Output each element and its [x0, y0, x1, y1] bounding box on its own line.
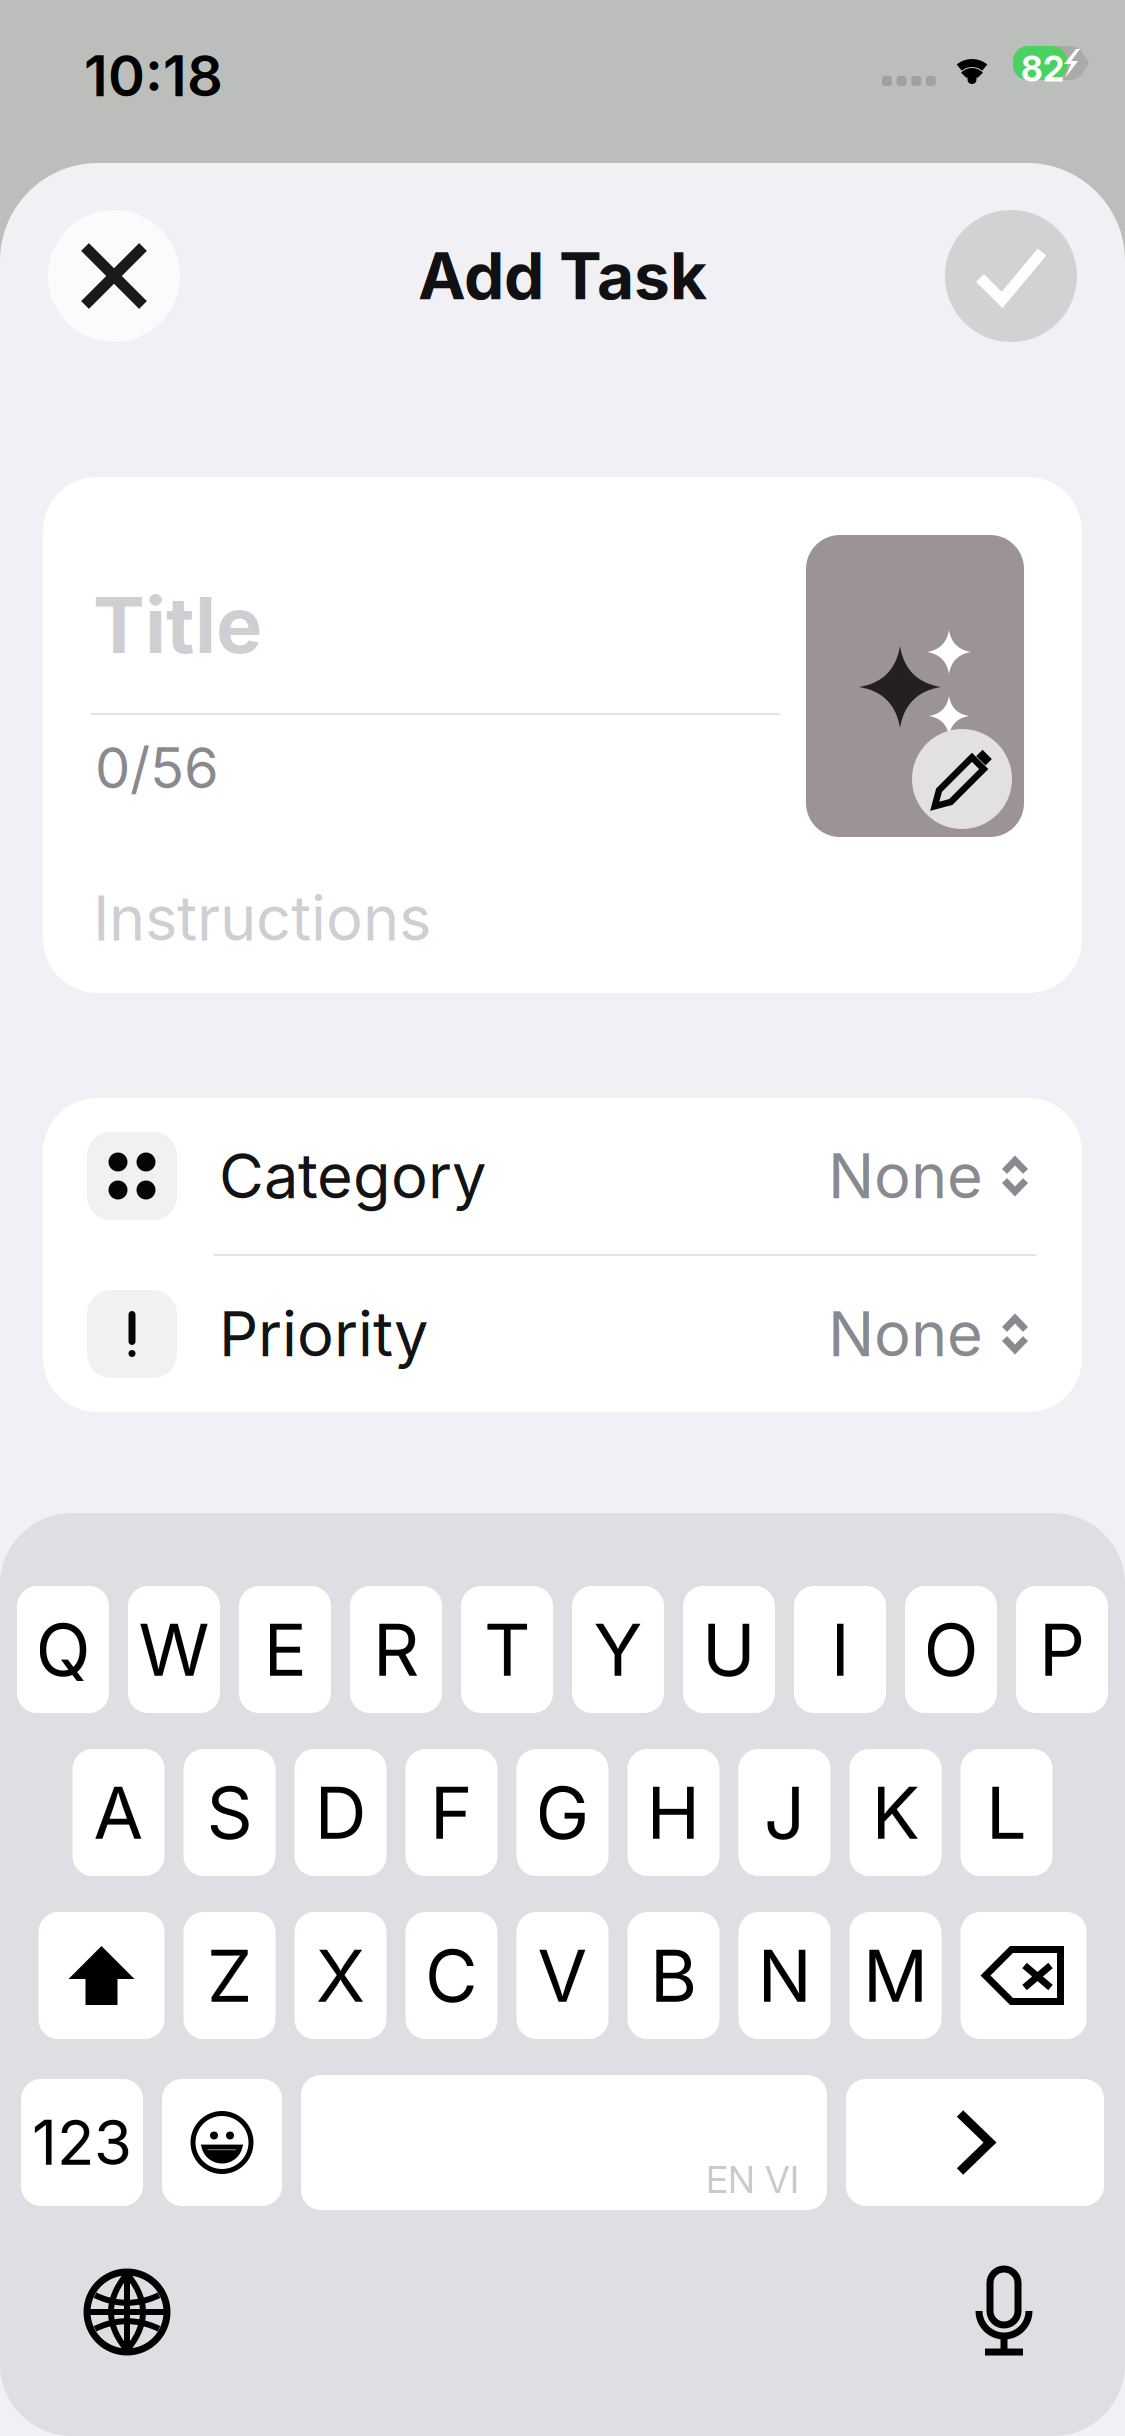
staticText: Q	[35, 1606, 90, 1693]
staticText: H	[646, 1769, 700, 1856]
staticText: E	[263, 1606, 306, 1693]
button[interactable]: A	[72, 1749, 164, 1876]
button[interactable]: Delete	[960, 1912, 1086, 2039]
staticText: Title	[93, 578, 262, 672]
button[interactable]: 123	[21, 2079, 143, 2206]
staticText: 82	[1021, 48, 1064, 90]
button[interactable]: C	[405, 1912, 497, 2039]
button[interactable]: Emoji	[162, 2079, 282, 2206]
staticText: EN VI	[706, 2157, 799, 2202]
staticText: N	[757, 1932, 811, 2019]
staticText: O	[923, 1606, 978, 1693]
staticText: None	[828, 1297, 983, 1371]
button[interactable]: T	[461, 1586, 553, 1713]
staticText: G	[535, 1769, 589, 1856]
staticText: W	[138, 1606, 209, 1693]
button[interactable]: Priority	[43, 1256, 1082, 1412]
button[interactable]: Return	[846, 2079, 1104, 2206]
button[interactable]: Next keyboard	[0, 2272, 167, 2352]
button[interactable]: W	[128, 1586, 220, 1713]
button[interactable]: Category	[43, 1098, 1082, 1254]
staticText: U	[702, 1606, 756, 1693]
button[interactable]: Q	[17, 1586, 109, 1713]
button[interactable]: space	[301, 2075, 827, 2210]
button[interactable]: Y	[572, 1586, 664, 1713]
button[interactable]: S	[183, 1749, 275, 1876]
button[interactable]: J	[738, 1749, 830, 1876]
staticText: Z	[207, 1932, 252, 2019]
button[interactable]: E	[239, 1586, 331, 1713]
button[interactable]: B	[627, 1912, 719, 2039]
staticText: Category	[219, 1139, 486, 1213]
button[interactable]: G	[516, 1749, 608, 1876]
staticText: 10:18	[84, 42, 223, 110]
staticText: Priority	[219, 1297, 428, 1371]
button[interactable]: I	[794, 1586, 886, 1713]
staticText: M	[863, 1932, 928, 2019]
staticText: Y	[593, 1606, 642, 1693]
staticText: P	[1039, 1606, 1085, 1693]
staticText: V	[537, 1932, 587, 2019]
staticText: F	[430, 1769, 473, 1856]
staticText: C	[425, 1932, 478, 2019]
staticText: R	[373, 1606, 419, 1693]
button[interactable]: K	[849, 1749, 941, 1876]
staticText: 0/56	[95, 734, 219, 802]
staticText: Add Task	[418, 237, 707, 315]
button[interactable]: U	[683, 1586, 775, 1713]
button[interactable]: R	[350, 1586, 442, 1713]
button[interactable]: H	[627, 1749, 719, 1876]
staticText: D	[314, 1769, 366, 1856]
button[interactable]: D	[294, 1749, 386, 1876]
staticText: Instructions	[93, 881, 431, 955]
button[interactable]: Shift	[38, 1912, 164, 2039]
button[interactable]: N	[738, 1912, 830, 2039]
button[interactable]: M	[849, 1912, 941, 2039]
button[interactable]: Z	[183, 1912, 275, 2039]
staticText: None	[828, 1139, 983, 1213]
staticText: I	[830, 1606, 849, 1693]
button[interactable]: P	[1016, 1586, 1108, 1713]
button[interactable]: X	[294, 1912, 386, 2039]
staticText: X	[316, 1932, 365, 2019]
button[interactable]: L	[960, 1749, 1052, 1876]
button[interactable]: F	[405, 1749, 497, 1876]
staticText: L	[986, 1769, 1027, 1856]
staticText: K	[871, 1769, 919, 1856]
staticText: 123	[32, 2105, 132, 2180]
button[interactable]: Save	[945, 210, 1077, 342]
staticText: B	[650, 1932, 697, 2019]
button[interactable]: Close	[48, 210, 180, 342]
staticText: J	[764, 1769, 805, 1856]
staticText: A	[93, 1769, 143, 1856]
button[interactable]: V	[516, 1912, 608, 2039]
button[interactable]: Dictation	[975, 2269, 1125, 2355]
button[interactable]: O	[905, 1586, 997, 1713]
button[interactable]: Generate with AI	[806, 535, 1024, 837]
staticText: S	[206, 1769, 252, 1856]
staticText: T	[484, 1606, 530, 1693]
